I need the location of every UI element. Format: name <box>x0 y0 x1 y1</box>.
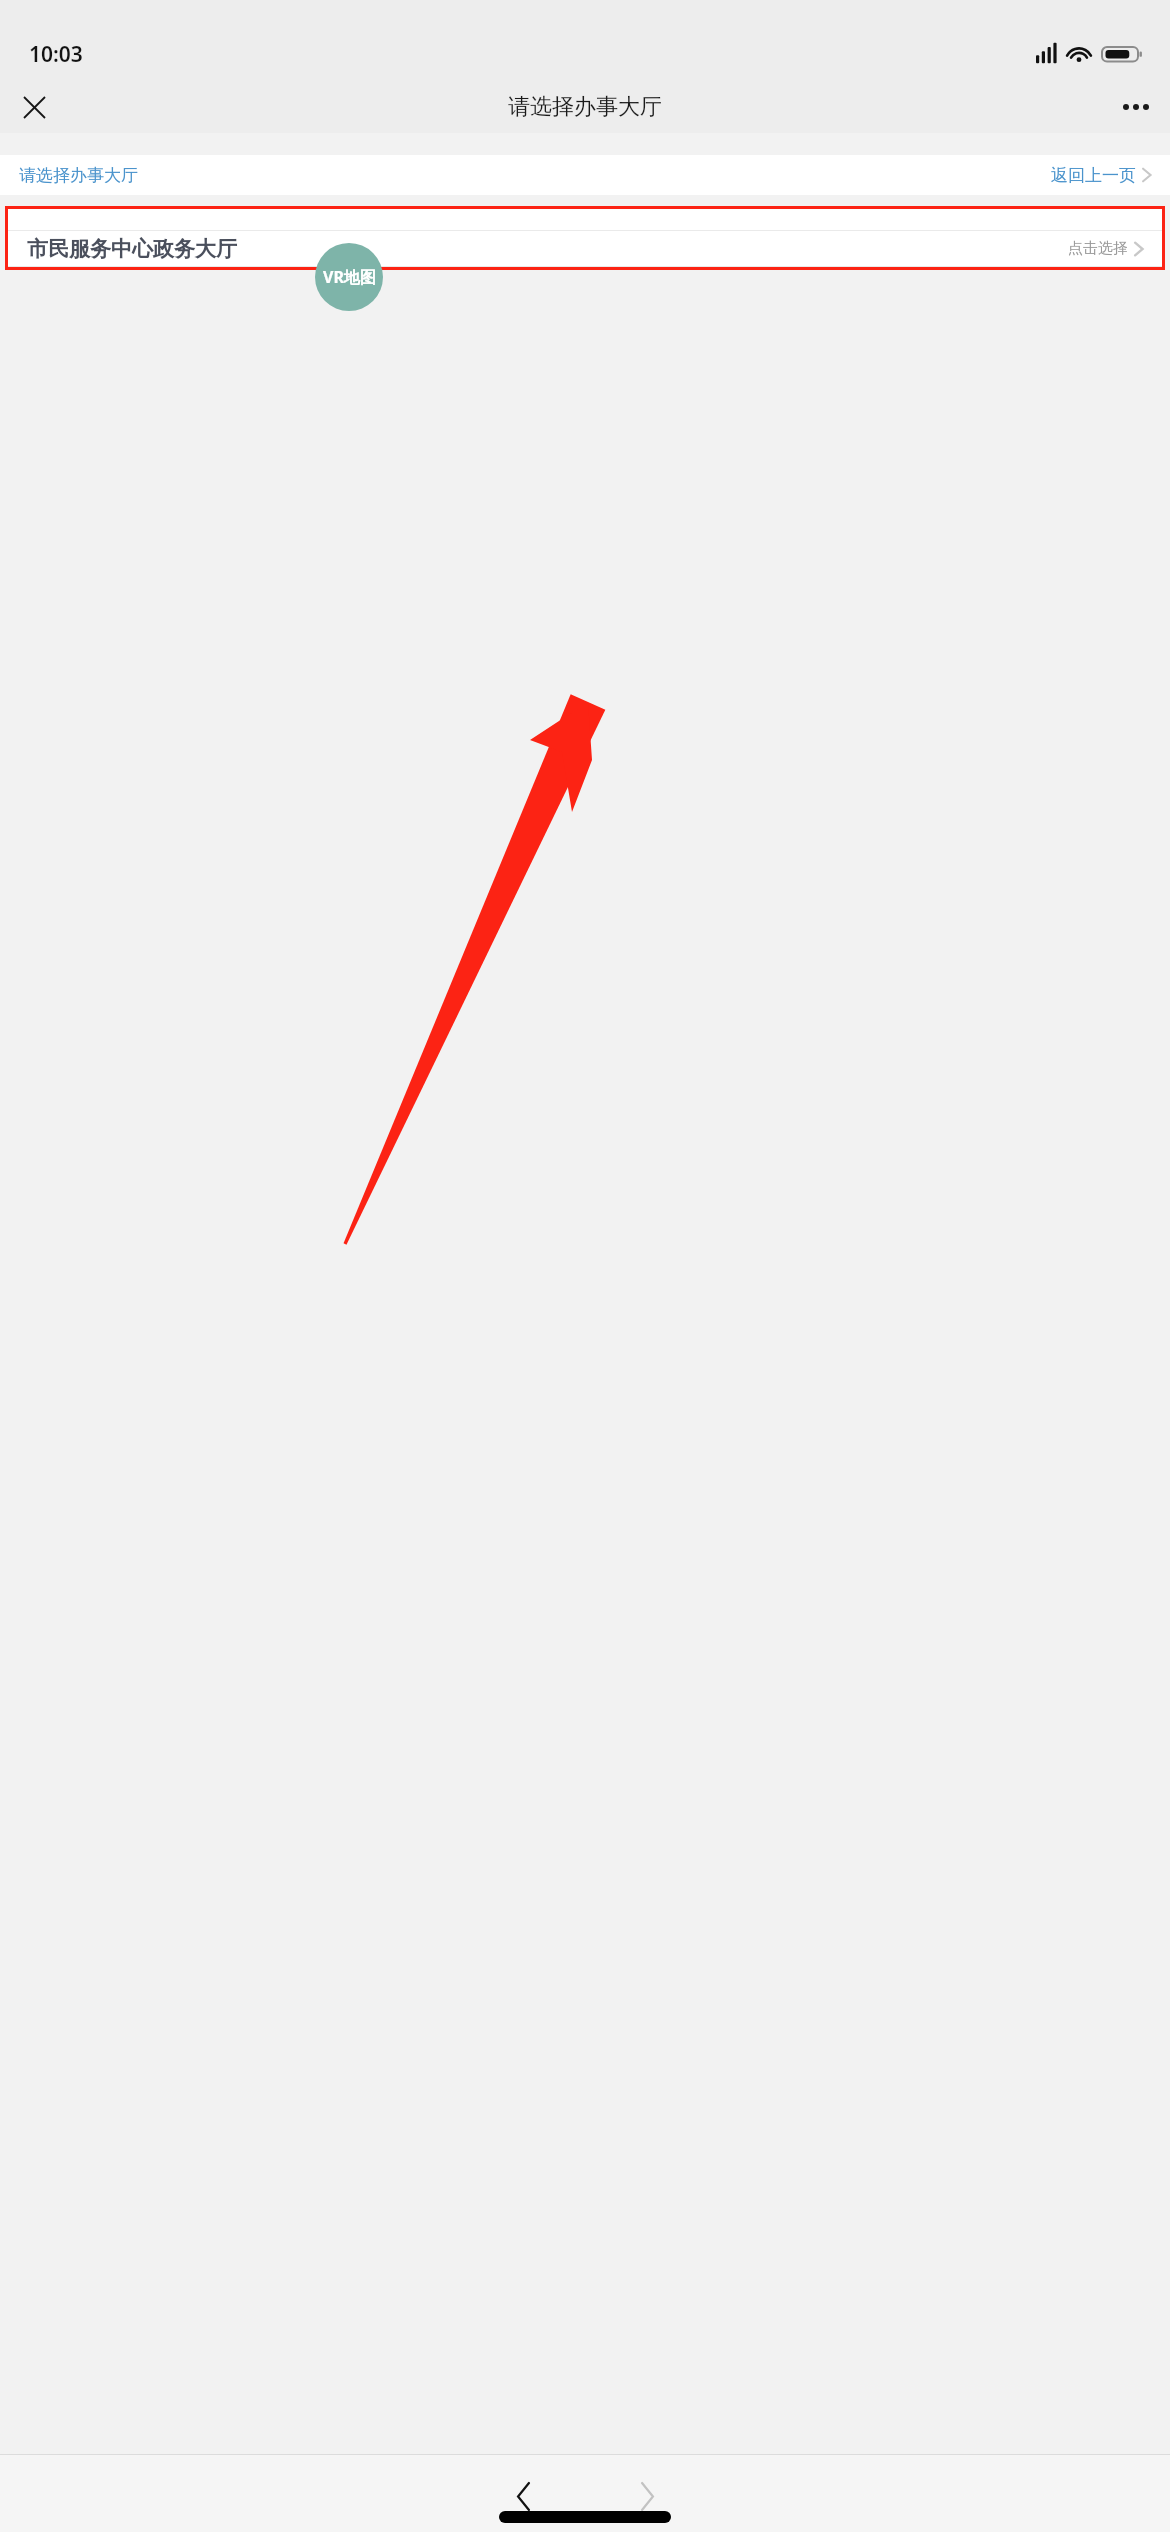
staticText: 请选择办事大厅 <box>19 165 138 186</box>
button[interactable]: 市民服务中心政务大厅 <box>8 231 1162 266</box>
staticText: 返回上一页 <box>1051 165 1136 186</box>
staticText: 10:03 <box>29 40 83 69</box>
button[interactable]: More options <box>1114 85 1158 129</box>
button[interactable]: VR地图 <box>315 243 383 311</box>
button[interactable]: Close <box>12 85 56 129</box>
staticText: VR地图 <box>323 266 376 288</box>
button[interactable]: Back <box>496 2469 550 2523</box>
staticText: 请选择办事大厅 <box>508 93 662 121</box>
staticText: 市民服务中心政务大厅 <box>27 236 237 262</box>
button[interactable]: Forward <box>620 2469 674 2523</box>
staticText: 点击选择 <box>1068 239 1128 258</box>
button[interactable]: 请选择办事大厅 <box>0 155 1170 195</box>
